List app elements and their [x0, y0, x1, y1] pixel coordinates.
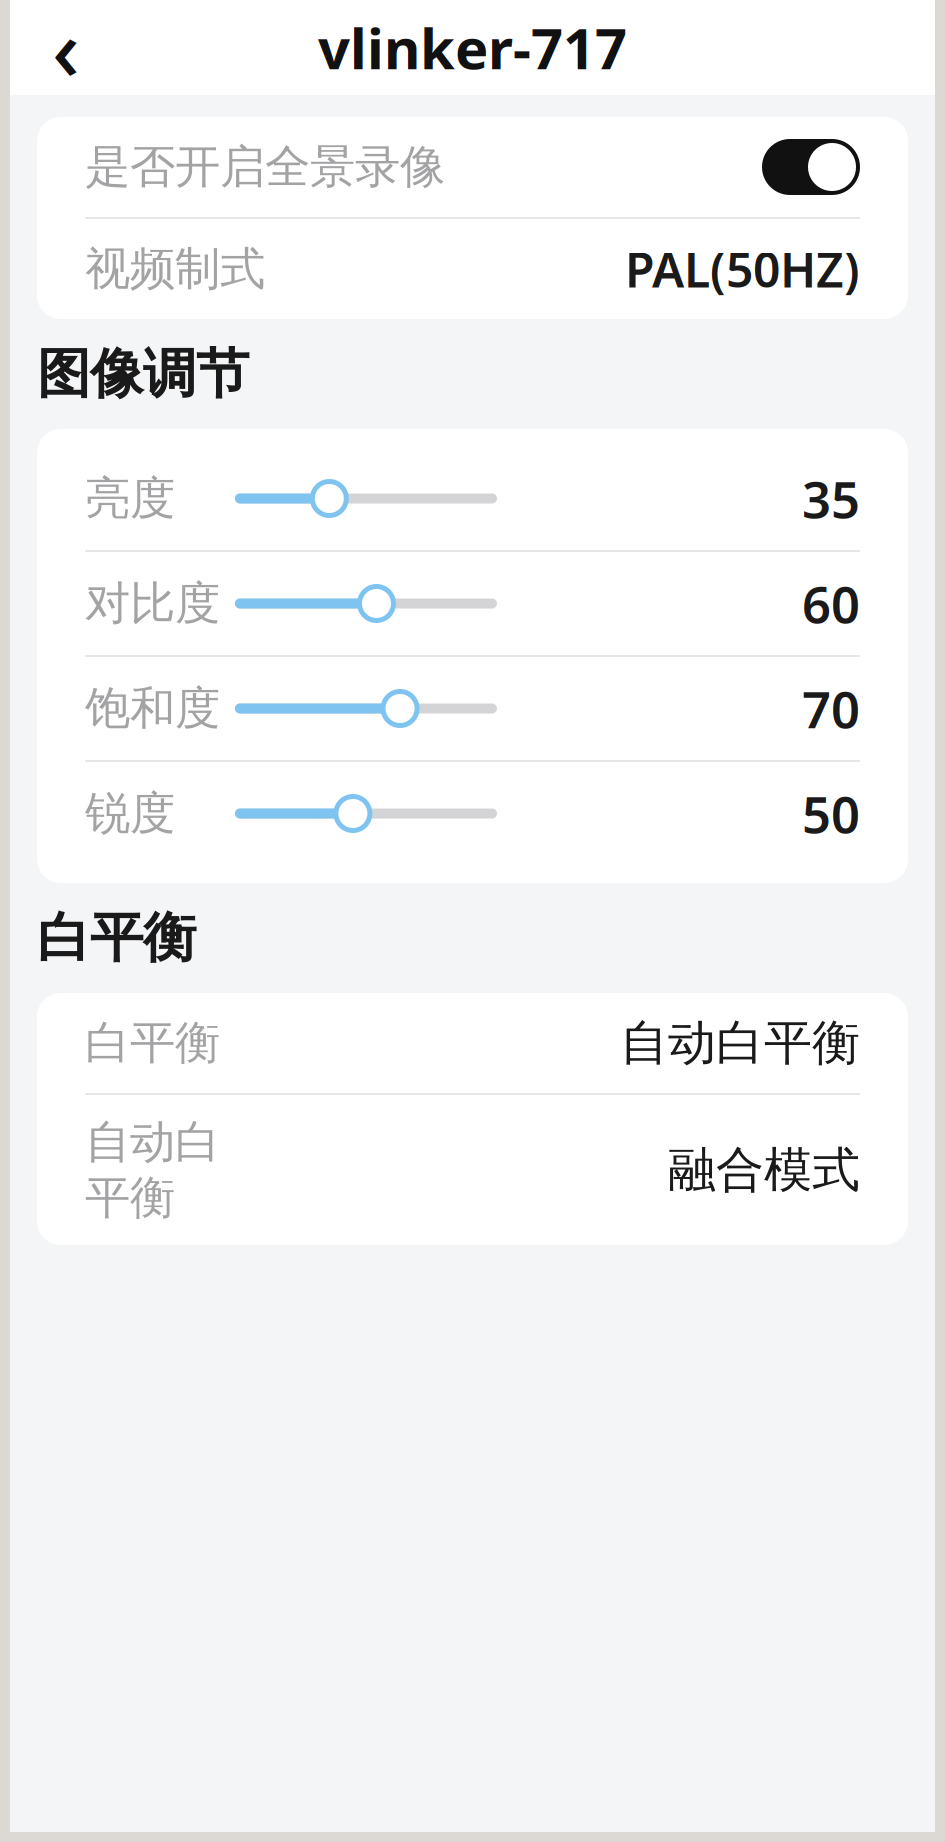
- button[interactable]: 白平衡: [37, 993, 908, 1093]
- button[interactable]: Back: [26, 7, 106, 87]
- button[interactable]: 是否开启全景录像: [37, 117, 908, 217]
- staticText: 视频制式: [85, 241, 265, 297]
- staticText: 自动白平衡: [620, 1013, 860, 1072]
- button[interactable]: 视频制式: [37, 219, 908, 319]
- staticText: ‹: [52, 0, 80, 104]
- staticText: 是否开启全景录像: [85, 139, 445, 195]
- staticText: 自动白平衡: [85, 1114, 220, 1226]
- staticText: 对比度: [85, 576, 220, 631]
- staticText: vlinker-717: [318, 10, 627, 85]
- staticText: 35: [802, 465, 860, 532]
- staticText: PAL(50HZ): [625, 237, 860, 301]
- staticText: 60: [802, 570, 860, 637]
- staticText: 饱和度: [85, 681, 220, 736]
- staticText: 融合模式: [668, 1140, 860, 1199]
- staticText: 白平衡: [37, 905, 196, 971]
- staticText: 白平衡: [85, 1015, 220, 1071]
- staticText: 70: [802, 675, 860, 742]
- staticText: 图像调节: [37, 341, 249, 407]
- staticText: 亮度: [85, 471, 175, 526]
- staticText: 锐度: [85, 786, 175, 841]
- button[interactable]: 自动白平衡: [37, 1095, 908, 1245]
- staticText: 50: [802, 780, 860, 847]
